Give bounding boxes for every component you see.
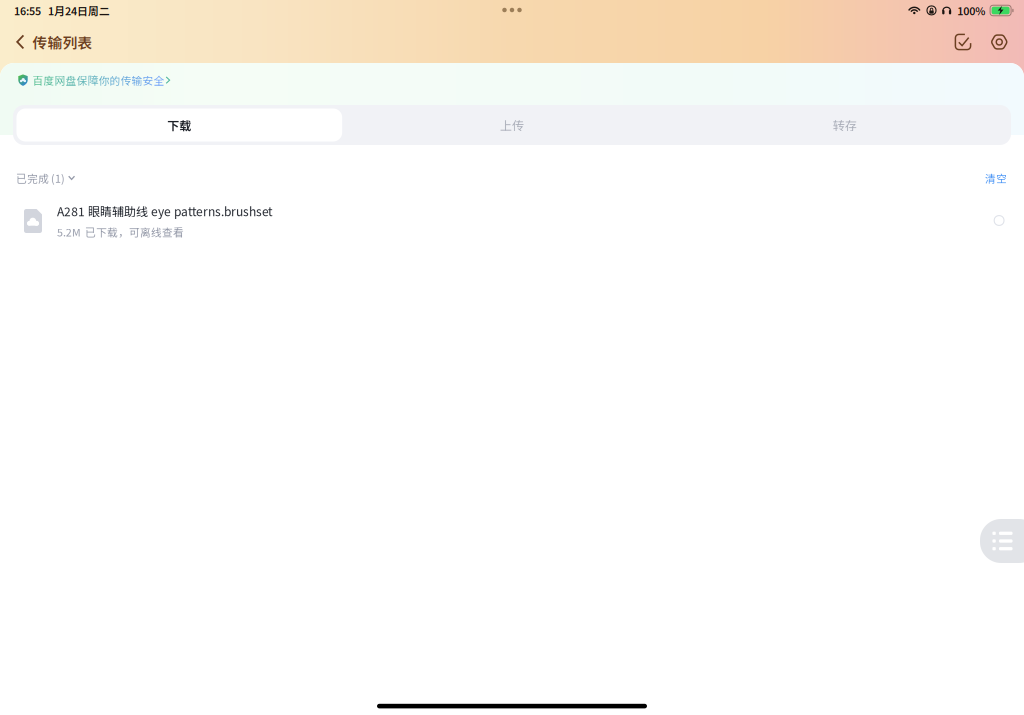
button[interactable]: 下载 bbox=[13, 105, 346, 145]
button[interactable]: Transfer list view bbox=[980, 519, 1024, 563]
button[interactable]: 清空 bbox=[975, 162, 1024, 194]
staticText: 100% bbox=[957, 3, 985, 18]
button[interactable]: Select items bbox=[949, 27, 976, 56]
staticText: 全 bbox=[153, 72, 164, 88]
staticText: 保 bbox=[76, 72, 87, 88]
staticText: 百 bbox=[32, 72, 43, 88]
staticText: 清空 bbox=[985, 170, 1007, 186]
staticText: 输 bbox=[131, 72, 142, 88]
staticText: 安 bbox=[142, 72, 153, 88]
staticText: 网 bbox=[54, 72, 65, 88]
button[interactable]: 转存 bbox=[678, 105, 1011, 145]
staticText: A281 眼睛辅助线 eye patterns.brushset bbox=[57, 202, 273, 220]
staticText: 盘 bbox=[65, 72, 76, 88]
staticText: 转存 bbox=[833, 116, 857, 134]
staticText: 度 bbox=[43, 72, 54, 88]
staticText: 1月24日周二 bbox=[48, 3, 110, 18]
button[interactable]: Settings bbox=[985, 27, 1013, 57]
staticText: 16:55 bbox=[14, 3, 41, 18]
button[interactable]: 百 bbox=[0, 66, 184, 94]
button[interactable]: 已完成 (1) bbox=[0, 162, 83, 194]
staticText: 已完成 (1) bbox=[16, 170, 65, 186]
staticText: 上传 bbox=[500, 116, 524, 134]
staticText: 的 bbox=[109, 72, 120, 88]
button[interactable]: 上传 bbox=[346, 105, 678, 145]
button[interactable]: 传输列表 bbox=[0, 24, 103, 60]
button[interactable]: A281 眼睛辅助线 eye patterns.brushset bbox=[0, 199, 1024, 243]
staticText: 障 bbox=[87, 72, 98, 88]
staticText: 5.2M 已下载，可离线查看 bbox=[57, 224, 184, 240]
staticText: 下载 bbox=[167, 116, 191, 134]
staticText: 传 bbox=[120, 72, 131, 88]
staticText: 你 bbox=[98, 72, 109, 88]
staticText: 传输列表 bbox=[33, 31, 93, 53]
